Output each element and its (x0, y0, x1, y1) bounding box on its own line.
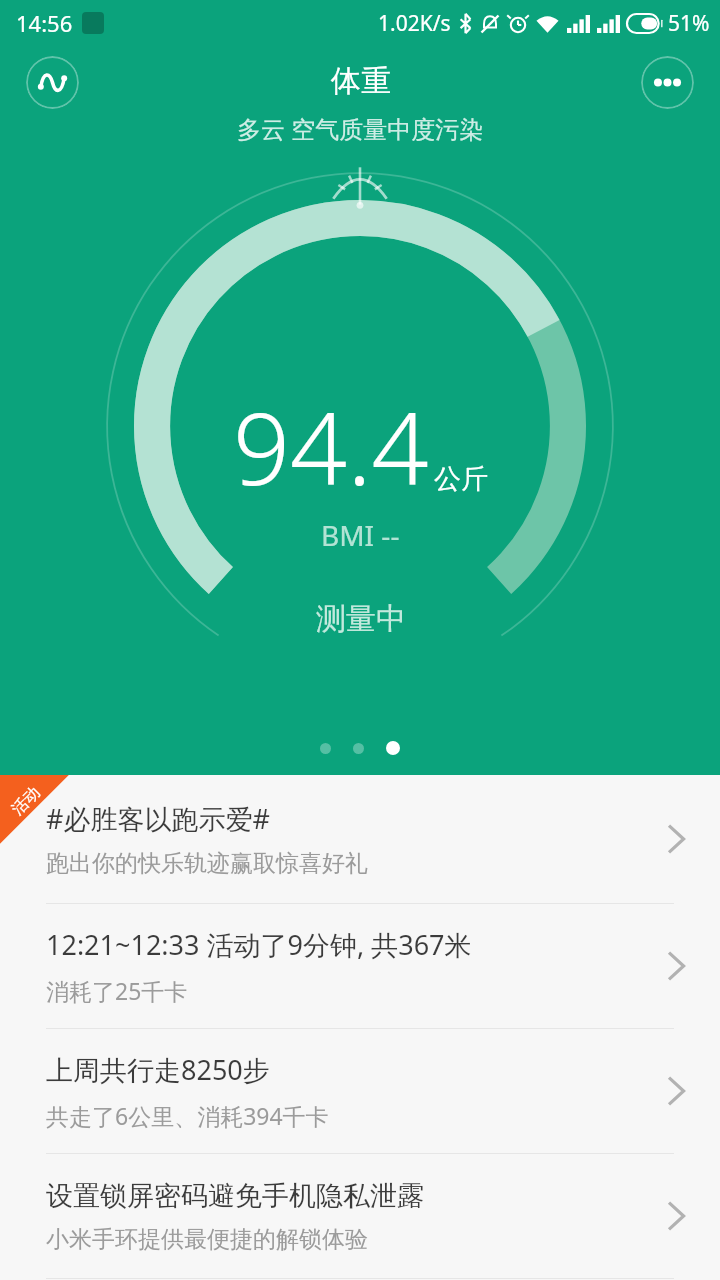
staticText: #必胜客以跑示爱# (46, 800, 270, 837)
staticText: 12:21~12:33 活动了9分钟, 共367米 (46, 926, 472, 963)
staticText: 设置锁屏密码避免手机隐私泄露 (46, 1179, 424, 1213)
staticText: 94.4 (233, 378, 429, 514)
button[interactable]: 上周共行走8250步 (0, 1029, 720, 1153)
staticText: 跑出你的快乐轨迹赢取惊喜好礼 (46, 849, 368, 878)
staticText: 体重 (331, 62, 391, 100)
staticText: BMI -- (321, 516, 400, 554)
staticText: 51% (668, 9, 710, 38)
staticText: 14:56 (16, 8, 73, 38)
button[interactable]: More options (641, 56, 694, 109)
button[interactable]: Trend chart (26, 56, 79, 109)
staticText: 上周共行走8250步 (46, 1051, 270, 1088)
staticText: 多云 空气质量中度污染 (237, 112, 484, 145)
staticText: 1.02K/s (378, 9, 451, 38)
staticText: 公斤 (434, 462, 488, 496)
staticText: 测量中 (316, 600, 406, 638)
staticText: 小米手环提供最便捷的解锁体验 (46, 1225, 368, 1254)
button[interactable]: 12:21~12:33 活动了9分钟, 共367米 (0, 904, 720, 1028)
staticText: 消耗了25千卡 (46, 975, 188, 1006)
staticText: 共走了6公里、消耗394千卡 (46, 1100, 329, 1131)
staticText: 活动 (8, 783, 44, 819)
button[interactable]: 设置锁屏密码避免手机隐私泄露 (0, 1154, 720, 1278)
button[interactable]: #必胜客以跑示爱# (0, 775, 720, 903)
